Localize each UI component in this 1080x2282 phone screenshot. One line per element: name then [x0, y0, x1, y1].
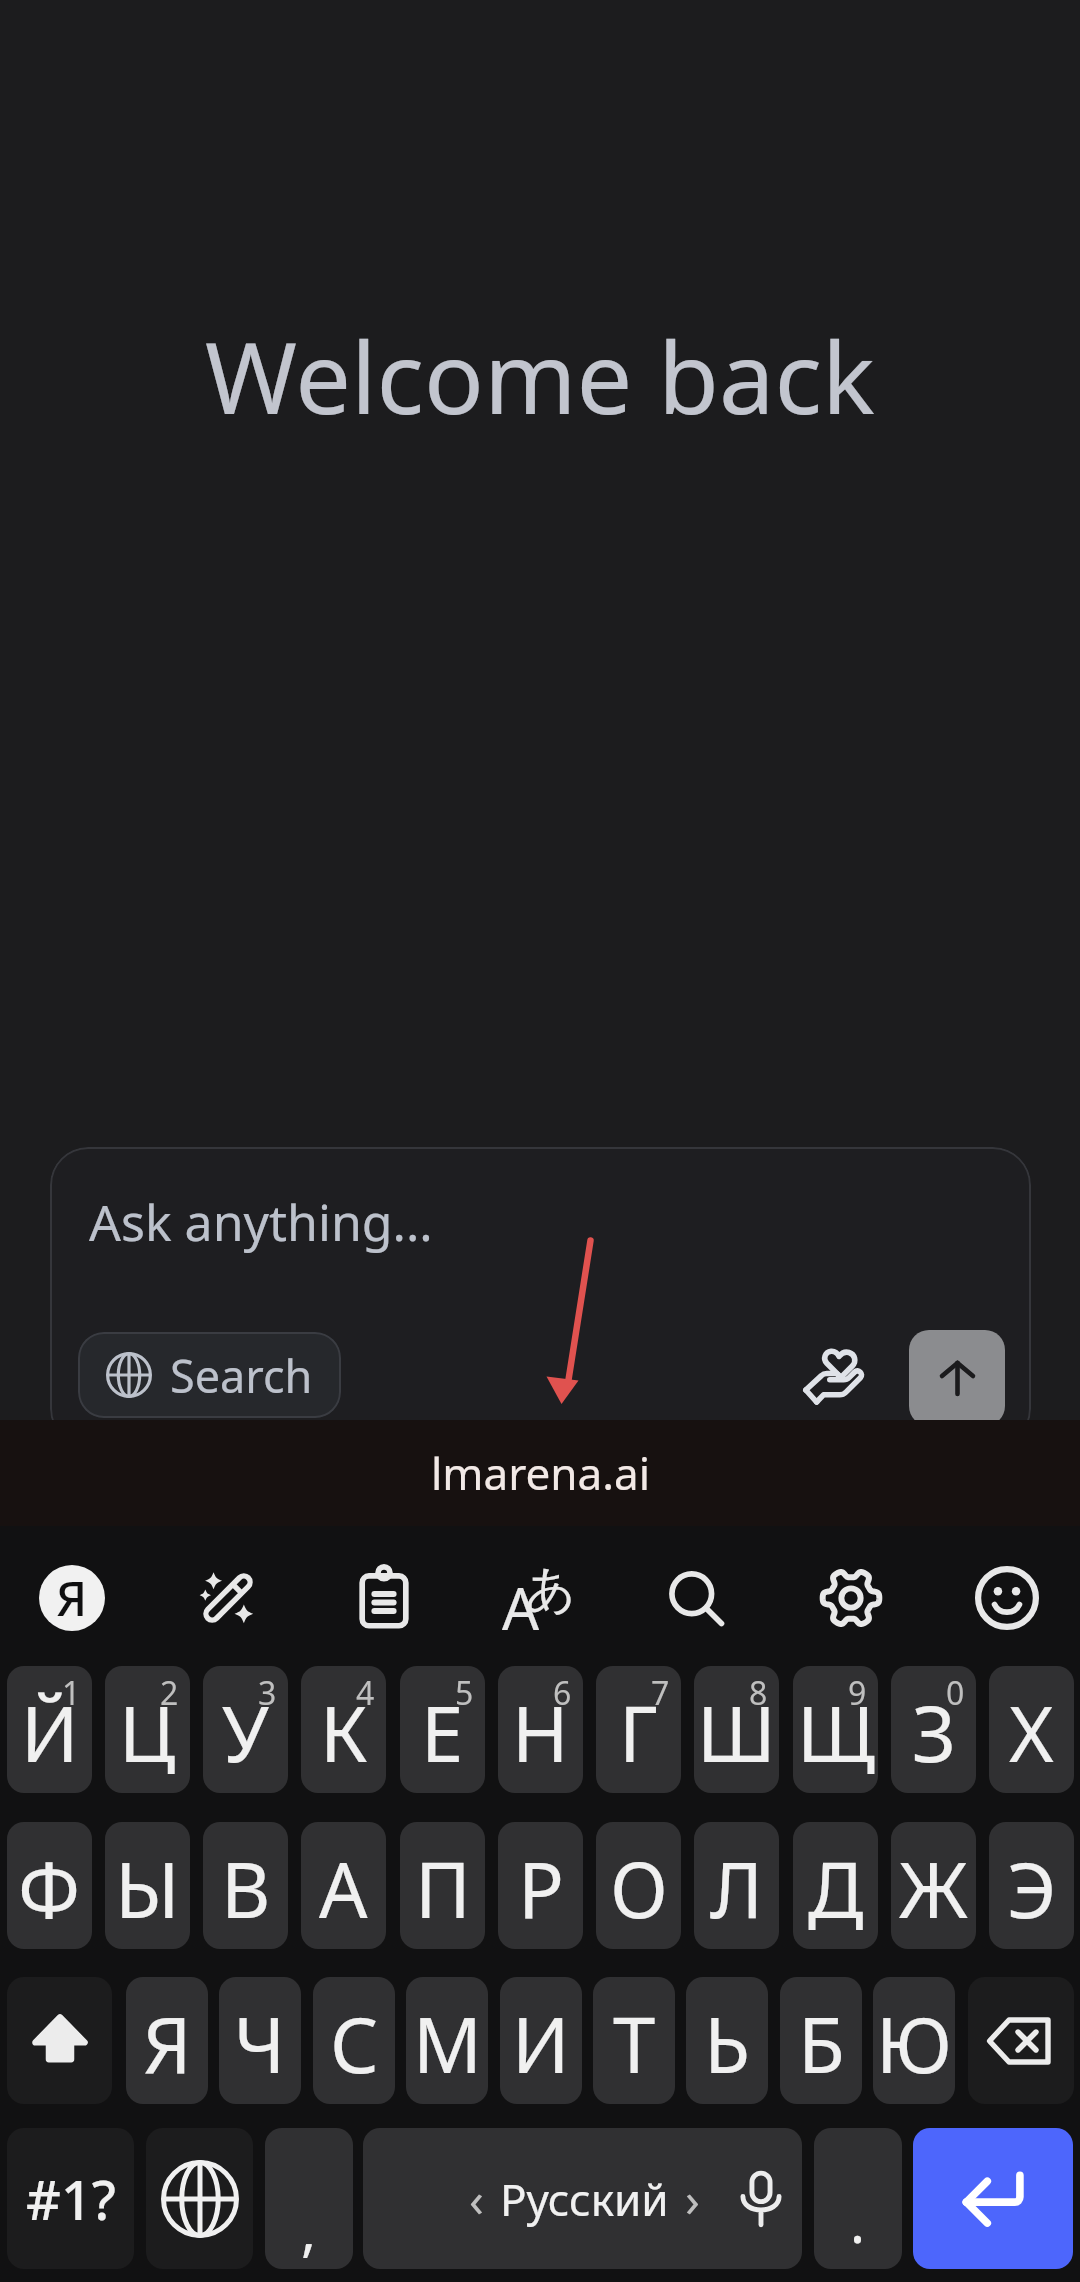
button[interactable]: Ф	[7, 1822, 92, 1949]
button[interactable]: Т	[593, 1977, 675, 2104]
button[interactable]: Ц	[105, 1666, 190, 1793]
staticText: 9	[848, 1671, 867, 1715]
button[interactable]: Ы	[105, 1822, 190, 1949]
staticText: Т	[613, 1992, 656, 2096]
staticText: Б	[798, 1992, 845, 2096]
staticText: Л	[710, 1837, 764, 1941]
staticText: Щ	[797, 1681, 875, 1785]
button[interactable]: Д	[793, 1822, 878, 1949]
button[interactable]: Л	[694, 1822, 779, 1949]
staticText: 3	[258, 1671, 277, 1715]
button[interactable]: Щ	[793, 1666, 878, 1793]
button[interactable]: Shift	[7, 1977, 112, 2104]
staticText: 0	[946, 1671, 965, 1715]
staticText: Ask anything...	[89, 1188, 433, 1256]
staticText: 4	[356, 1671, 375, 1715]
button[interactable]: Translate	[482, 1542, 594, 1654]
button[interactable]: Ю	[873, 1977, 955, 2104]
button[interactable]: Б	[780, 1977, 862, 2104]
button[interactable]: К	[301, 1666, 386, 1793]
button[interactable]: Change language	[146, 2128, 253, 2269]
button[interactable]: Г	[596, 1666, 681, 1793]
staticText: Ь	[704, 1992, 751, 2096]
button[interactable]: Ask anything...	[50, 1147, 1031, 1447]
button[interactable]: Backspace	[968, 1977, 1074, 2104]
staticText: Н	[512, 1681, 569, 1785]
staticText: #1?	[26, 2162, 116, 2236]
staticText: Ф	[18, 1837, 81, 1941]
button[interactable]: .	[814, 2128, 902, 2269]
button[interactable]: Х	[989, 1666, 1074, 1793]
staticText: Г	[619, 1681, 658, 1785]
staticText: С	[330, 1992, 379, 2096]
button[interactable]: ,	[265, 2128, 353, 2269]
button[interactable]: А	[301, 1822, 386, 1949]
staticText: .	[850, 2183, 866, 2259]
button[interactable]: Я	[126, 1977, 208, 2104]
button[interactable]: Ч	[219, 1977, 301, 2104]
staticText: Search	[170, 1345, 313, 1406]
button[interactable]: У	[203, 1666, 288, 1793]
staticText: A	[502, 1568, 540, 1636]
staticText: Д	[808, 1837, 864, 1941]
button[interactable]: Ж	[891, 1822, 976, 1949]
staticText: У	[222, 1681, 269, 1785]
staticText: あ	[525, 1558, 577, 1621]
button[interactable]: М	[406, 1977, 488, 2104]
staticText: 2	[160, 1671, 179, 1715]
button[interactable]: Е	[400, 1666, 485, 1793]
staticText: Ч	[234, 1992, 286, 2096]
button[interactable]: Yandex	[16, 1542, 128, 1654]
staticText: Я	[56, 1565, 88, 1630]
staticText: ‹	[469, 2166, 484, 2231]
button[interactable]: С	[313, 1977, 395, 2104]
staticText: М	[413, 1992, 482, 2096]
button[interactable]: Н	[498, 1666, 583, 1793]
button[interactable]: З	[891, 1666, 976, 1793]
staticText: 6	[553, 1671, 572, 1715]
staticText: П	[415, 1837, 471, 1941]
staticText: Ы	[115, 1837, 180, 1941]
staticText: Я	[143, 1992, 192, 2096]
button[interactable]: Clipboard	[328, 1542, 440, 1654]
staticText: lmarena.ai	[431, 1443, 650, 1503]
staticText: Русский	[500, 2169, 669, 2229]
button[interactable]: О	[596, 1822, 681, 1949]
button[interactable]: #1?	[7, 2128, 134, 2269]
staticText: О	[610, 1837, 668, 1941]
staticText: В	[221, 1837, 271, 1941]
button[interactable]: Ш	[694, 1666, 779, 1793]
staticText: А	[319, 1837, 368, 1941]
button[interactable]: В	[203, 1822, 288, 1949]
staticText: ›	[685, 2166, 700, 2231]
staticText: Й	[21, 1681, 79, 1785]
staticText: Э	[1007, 1837, 1057, 1941]
button[interactable]: Й	[7, 1666, 92, 1793]
button[interactable]: lmarena.ai	[0, 1420, 1080, 1526]
button[interactable]: Settings	[795, 1542, 907, 1654]
button[interactable]: Enter	[913, 2128, 1073, 2269]
button[interactable]: П	[400, 1822, 485, 1949]
staticText: Ж	[899, 1837, 968, 1941]
staticText: 8	[749, 1671, 768, 1715]
button[interactable]: Emoji	[951, 1542, 1063, 1654]
button[interactable]: Search	[640, 1542, 752, 1654]
button[interactable]: ‹	[363, 2128, 802, 2269]
staticText: Х	[1009, 1681, 1054, 1785]
staticText: 7	[651, 1671, 670, 1715]
staticText: Р	[518, 1837, 564, 1941]
staticText: 5	[455, 1671, 474, 1715]
button[interactable]: Search	[78, 1332, 341, 1418]
button[interactable]: Send	[909, 1330, 1005, 1426]
button[interactable]: Donate	[787, 1328, 887, 1428]
button[interactable]: Magic	[172, 1542, 284, 1654]
staticText: 1	[62, 1671, 81, 1715]
staticText: Ц	[119, 1681, 176, 1785]
staticText: Welcome back	[0, 308, 1080, 443]
button[interactable]: Ь	[686, 1977, 768, 2104]
button[interactable]: И	[500, 1977, 582, 2104]
staticText: ,	[301, 2191, 317, 2267]
button[interactable]: Р	[498, 1822, 583, 1949]
button[interactable]: Э	[989, 1822, 1074, 1949]
staticText: З	[912, 1681, 956, 1785]
